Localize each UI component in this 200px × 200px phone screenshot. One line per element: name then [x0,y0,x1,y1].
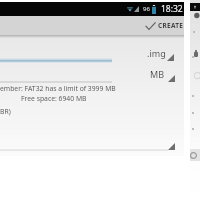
staticText: MB [150,68,165,80]
staticText: .img [147,47,166,59]
staticText: 96 [143,5,150,13]
button[interactable]: CREATE [143,18,186,33]
staticText: CREATE [158,21,184,30]
staticText: BR) [0,107,11,116]
staticText: Free space: 6940 MB [21,94,87,103]
staticText: 18:32 [161,3,183,15]
staticText: ember: FAT32 has a limit of 3999 MB [0,84,116,93]
